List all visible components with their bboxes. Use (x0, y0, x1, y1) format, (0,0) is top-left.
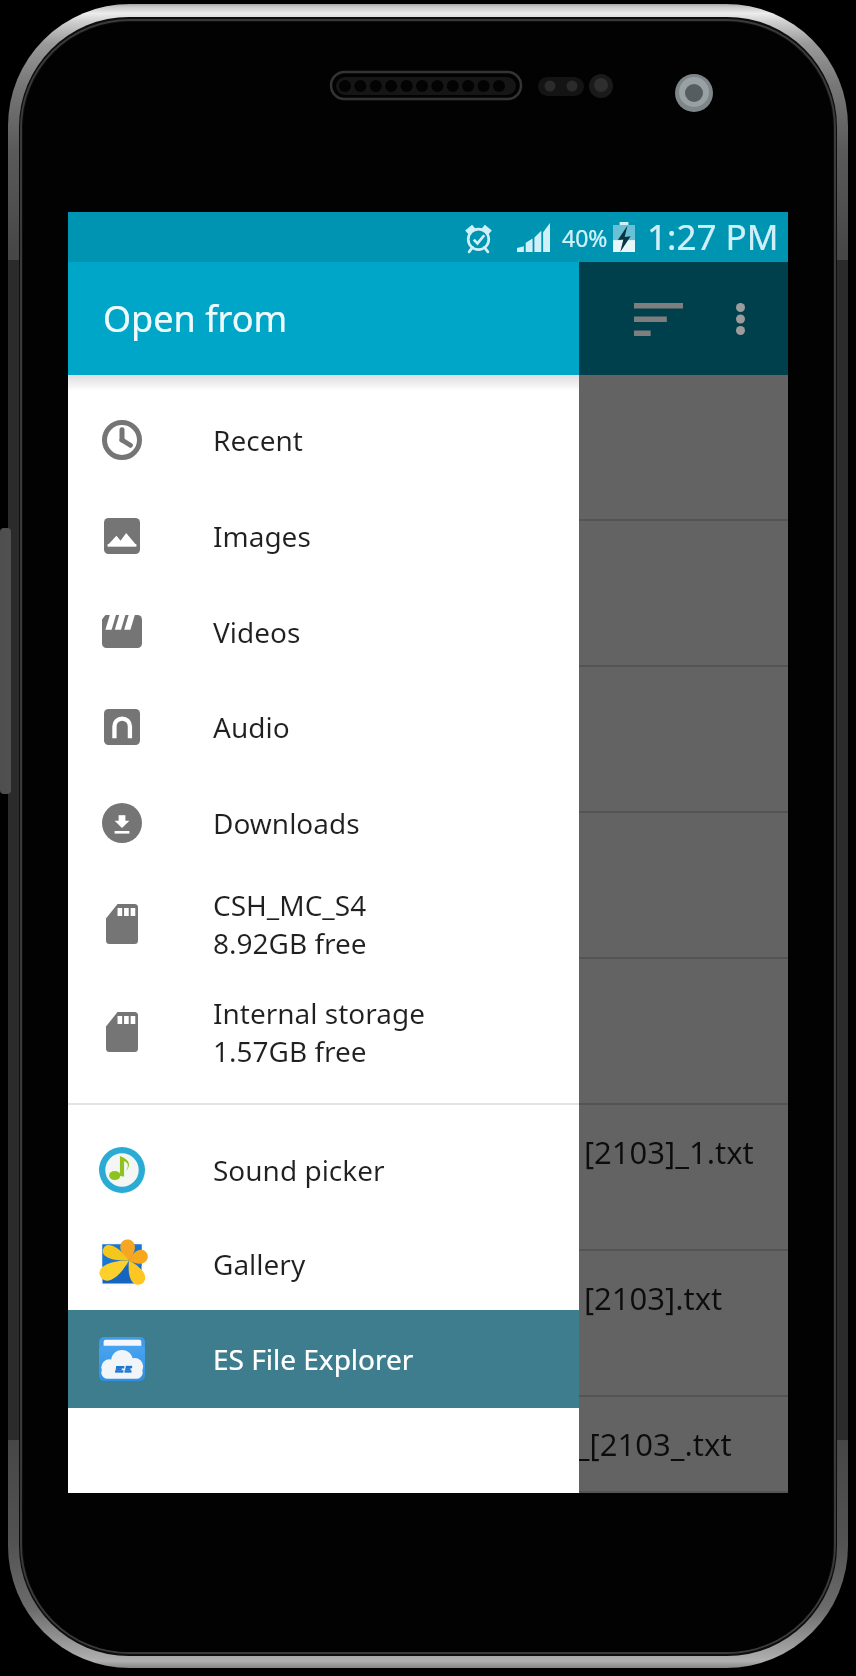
button[interactable] (68, 959, 788, 1105)
staticText: Videos (213, 613, 301, 651)
button[interactable] (68, 521, 788, 667)
button[interactable]: Recent (68, 392, 579, 488)
button[interactable]: Images (68, 488, 579, 584)
button[interactable]: Notes [2103]_1.txt (68, 1105, 788, 1251)
staticText: Downloads (213, 804, 360, 842)
button[interactable]: Notes [2103].txt (68, 1251, 788, 1397)
staticText: Audio (213, 708, 290, 746)
button[interactable]: Downloads (68, 775, 579, 870)
button[interactable]: Sound picker (68, 1122, 579, 1217)
staticText: 40% (562, 222, 608, 253)
staticText: 1.57GB free (213, 1032, 367, 1070)
button[interactable] (68, 813, 788, 959)
button[interactable] (68, 375, 788, 521)
button[interactable]: CSH_MC_S4 (68, 870, 579, 978)
staticText: Sound picker (213, 1151, 385, 1189)
button[interactable]: Gallery (68, 1217, 579, 1310)
staticText: Gallery (213, 1245, 306, 1283)
button[interactable]: Sort (611, 264, 705, 374)
staticText: Notes [2103].txt (490, 1277, 723, 1319)
staticText: Recent (213, 421, 303, 459)
button[interactable]: Notes_[2103_.txt (68, 1397, 788, 1493)
staticText: Open from (103, 294, 288, 343)
staticText: Notes_[2103_.txt (490, 1423, 732, 1465)
button[interactable]: More options (701, 264, 779, 374)
button[interactable]: Videos (68, 584, 579, 679)
button[interactable] (68, 667, 788, 813)
staticText: Notes [2103]_1.txt (490, 1131, 754, 1173)
staticText: Internal storage (213, 994, 425, 1032)
staticText: ES File Explorer (213, 1340, 414, 1378)
staticText: 8.92GB free (213, 924, 367, 962)
button[interactable]: Audio (68, 679, 579, 775)
staticText: CSH_MC_S4 (213, 886, 367, 924)
button[interactable]: Internal storage (68, 978, 579, 1086)
staticText: 1:27 PM (647, 213, 779, 261)
staticText: Images (213, 517, 311, 555)
button[interactable]: ES File Explorer (68, 1310, 579, 1408)
